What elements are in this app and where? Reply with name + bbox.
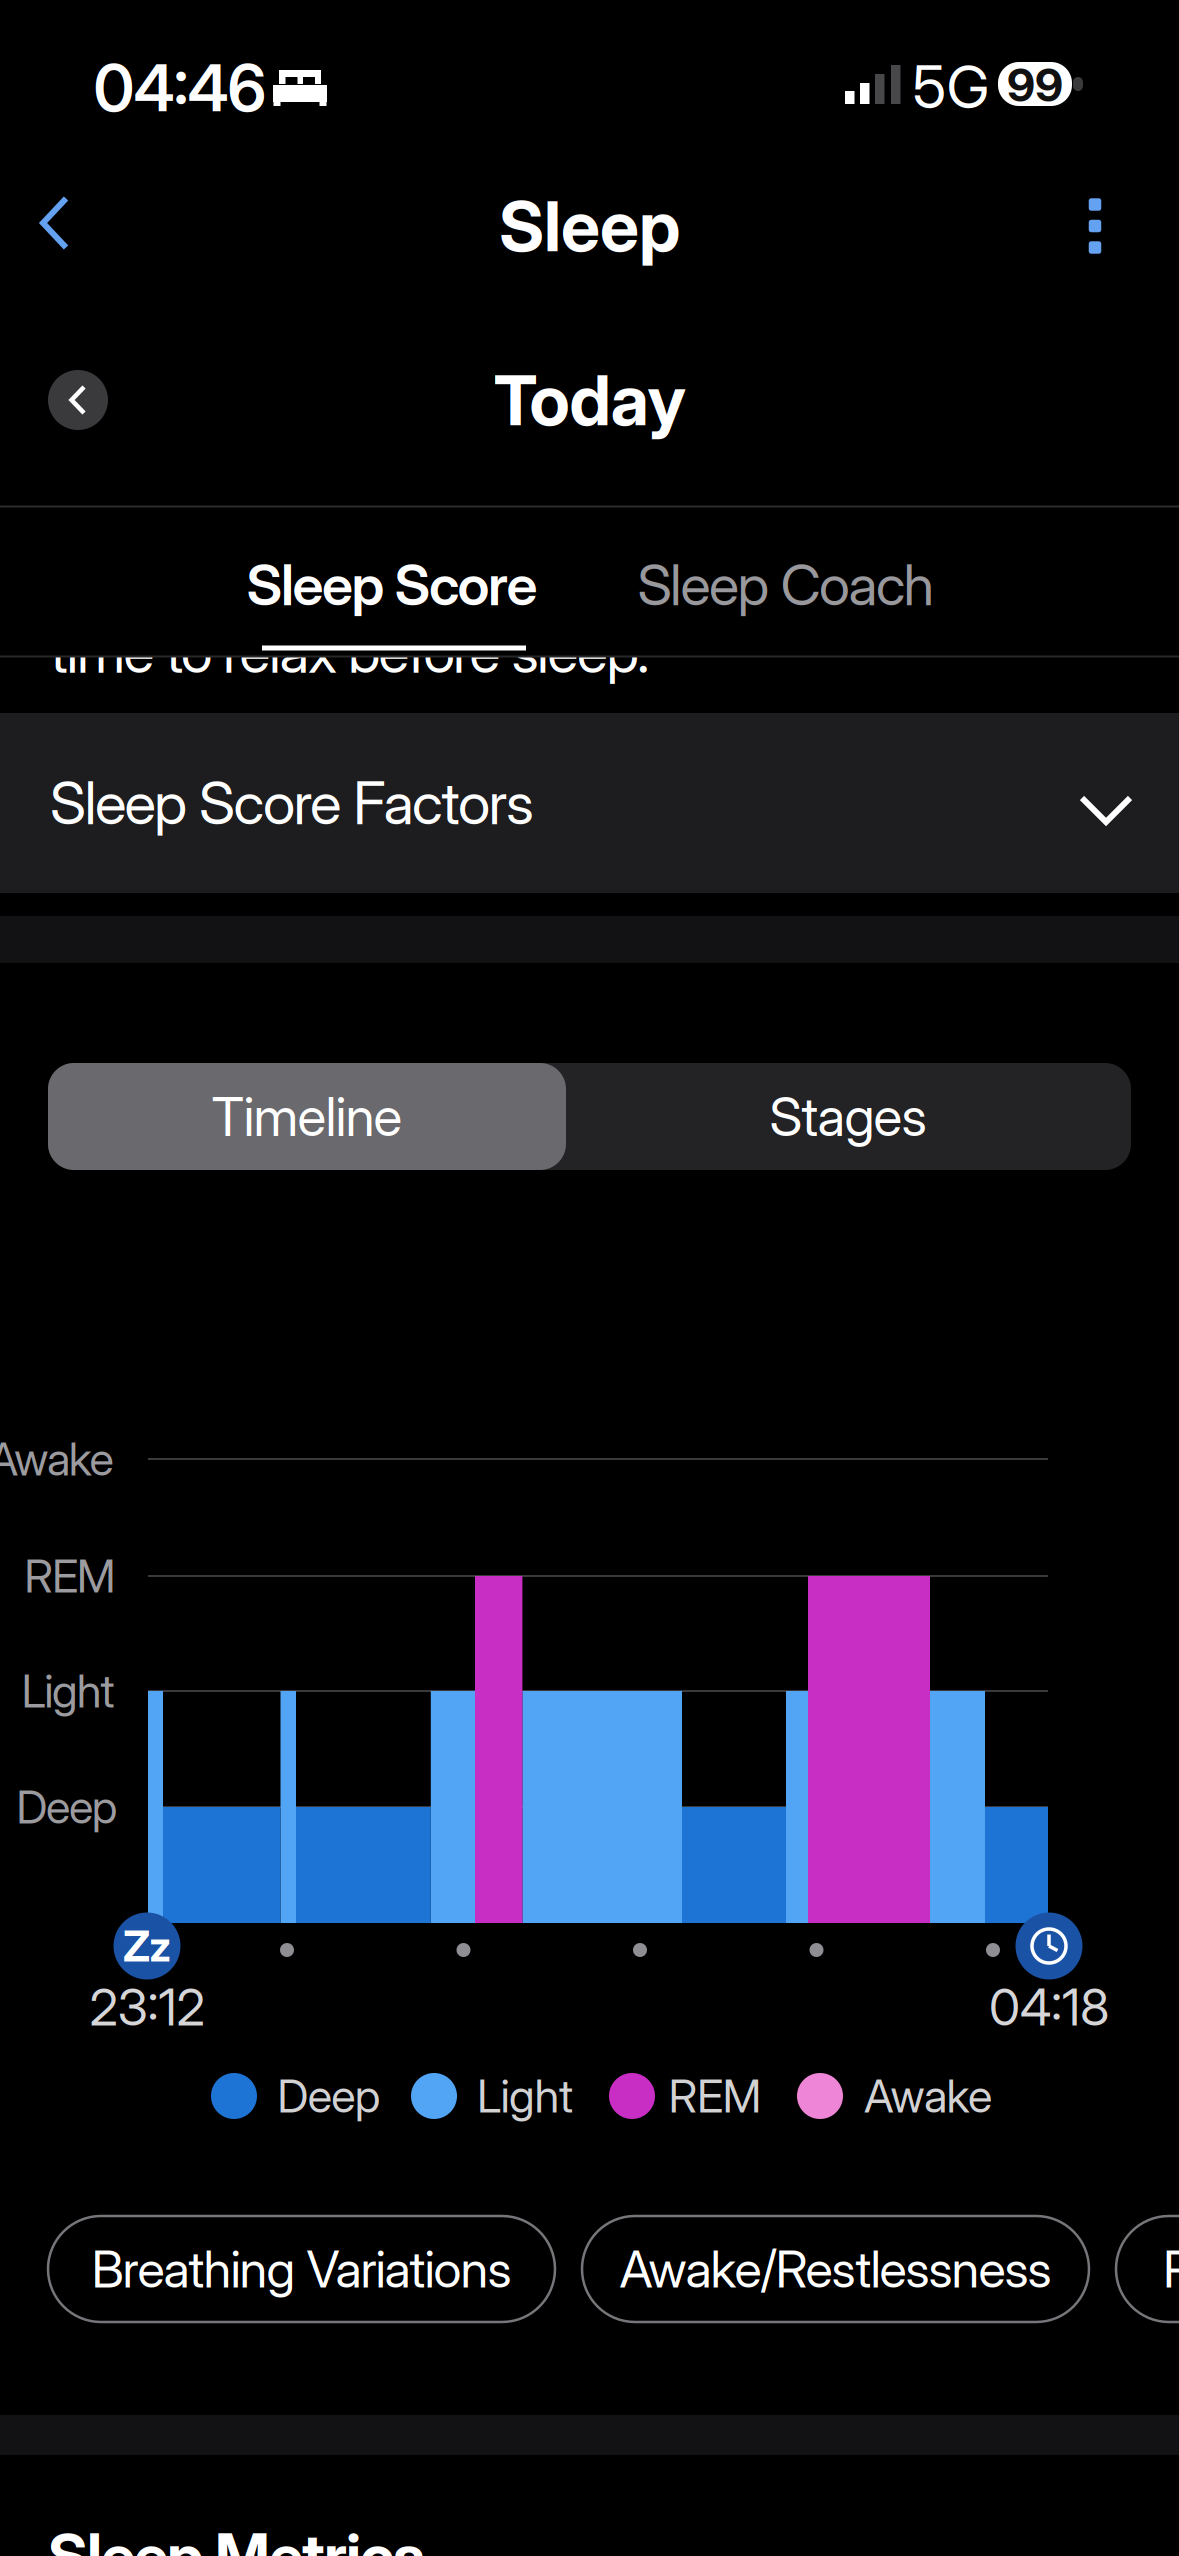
button[interactable] <box>48 2216 555 2322</box>
staticText: Sleep Score Factors <box>50 768 534 838</box>
staticText: 04:18 <box>989 1977 1109 2037</box>
button[interactable]: Sleep Coach <box>566 540 1006 630</box>
button[interactable]: Previous day <box>48 370 108 430</box>
staticText: 99 <box>1007 58 1063 112</box>
staticText: Zz <box>123 1921 171 1971</box>
staticText: REM <box>668 2069 761 2123</box>
staticText: 04:46 <box>93 50 266 126</box>
staticText: Awake/Restlessness <box>619 2239 1051 2299</box>
staticText: Timeline <box>211 1085 402 1148</box>
staticText: time to relax before sleep. <box>50 618 650 686</box>
staticText: Restless Moments <box>1163 2239 1179 2299</box>
staticText: Awake <box>864 2069 992 2123</box>
staticText: Stages <box>769 1085 926 1148</box>
staticText: REM <box>24 1549 116 1603</box>
staticText: Breathing Variations <box>91 2239 511 2299</box>
staticText: Awake <box>0 1432 114 1486</box>
staticText: Sleep Coach <box>637 552 934 618</box>
button[interactable]: Sleep Score <box>172 540 612 630</box>
staticText: Light <box>477 2069 573 2123</box>
button[interactable] <box>582 2216 1089 2322</box>
button[interactable]: More options <box>1089 198 1101 254</box>
staticText: Sleep <box>499 185 680 267</box>
button[interactable]: Sleep Score Factors <box>0 713 1179 893</box>
staticText: Sleep Score <box>246 552 537 618</box>
staticText: 23:12 <box>89 1977 204 2037</box>
button[interactable]: Stages <box>598 1063 1098 1170</box>
staticText: Today <box>493 359 685 441</box>
staticText: Deep <box>16 1780 118 1834</box>
button[interactable]: Back <box>36 194 76 251</box>
staticText: 5G <box>912 52 989 122</box>
button[interactable]: Timeline <box>48 1063 566 1170</box>
button[interactable] <box>1116 2216 1179 2322</box>
staticText: Sleep Metrics <box>48 2520 425 2556</box>
staticText: Deep <box>277 2069 381 2123</box>
staticText: Light <box>21 1664 115 1718</box>
